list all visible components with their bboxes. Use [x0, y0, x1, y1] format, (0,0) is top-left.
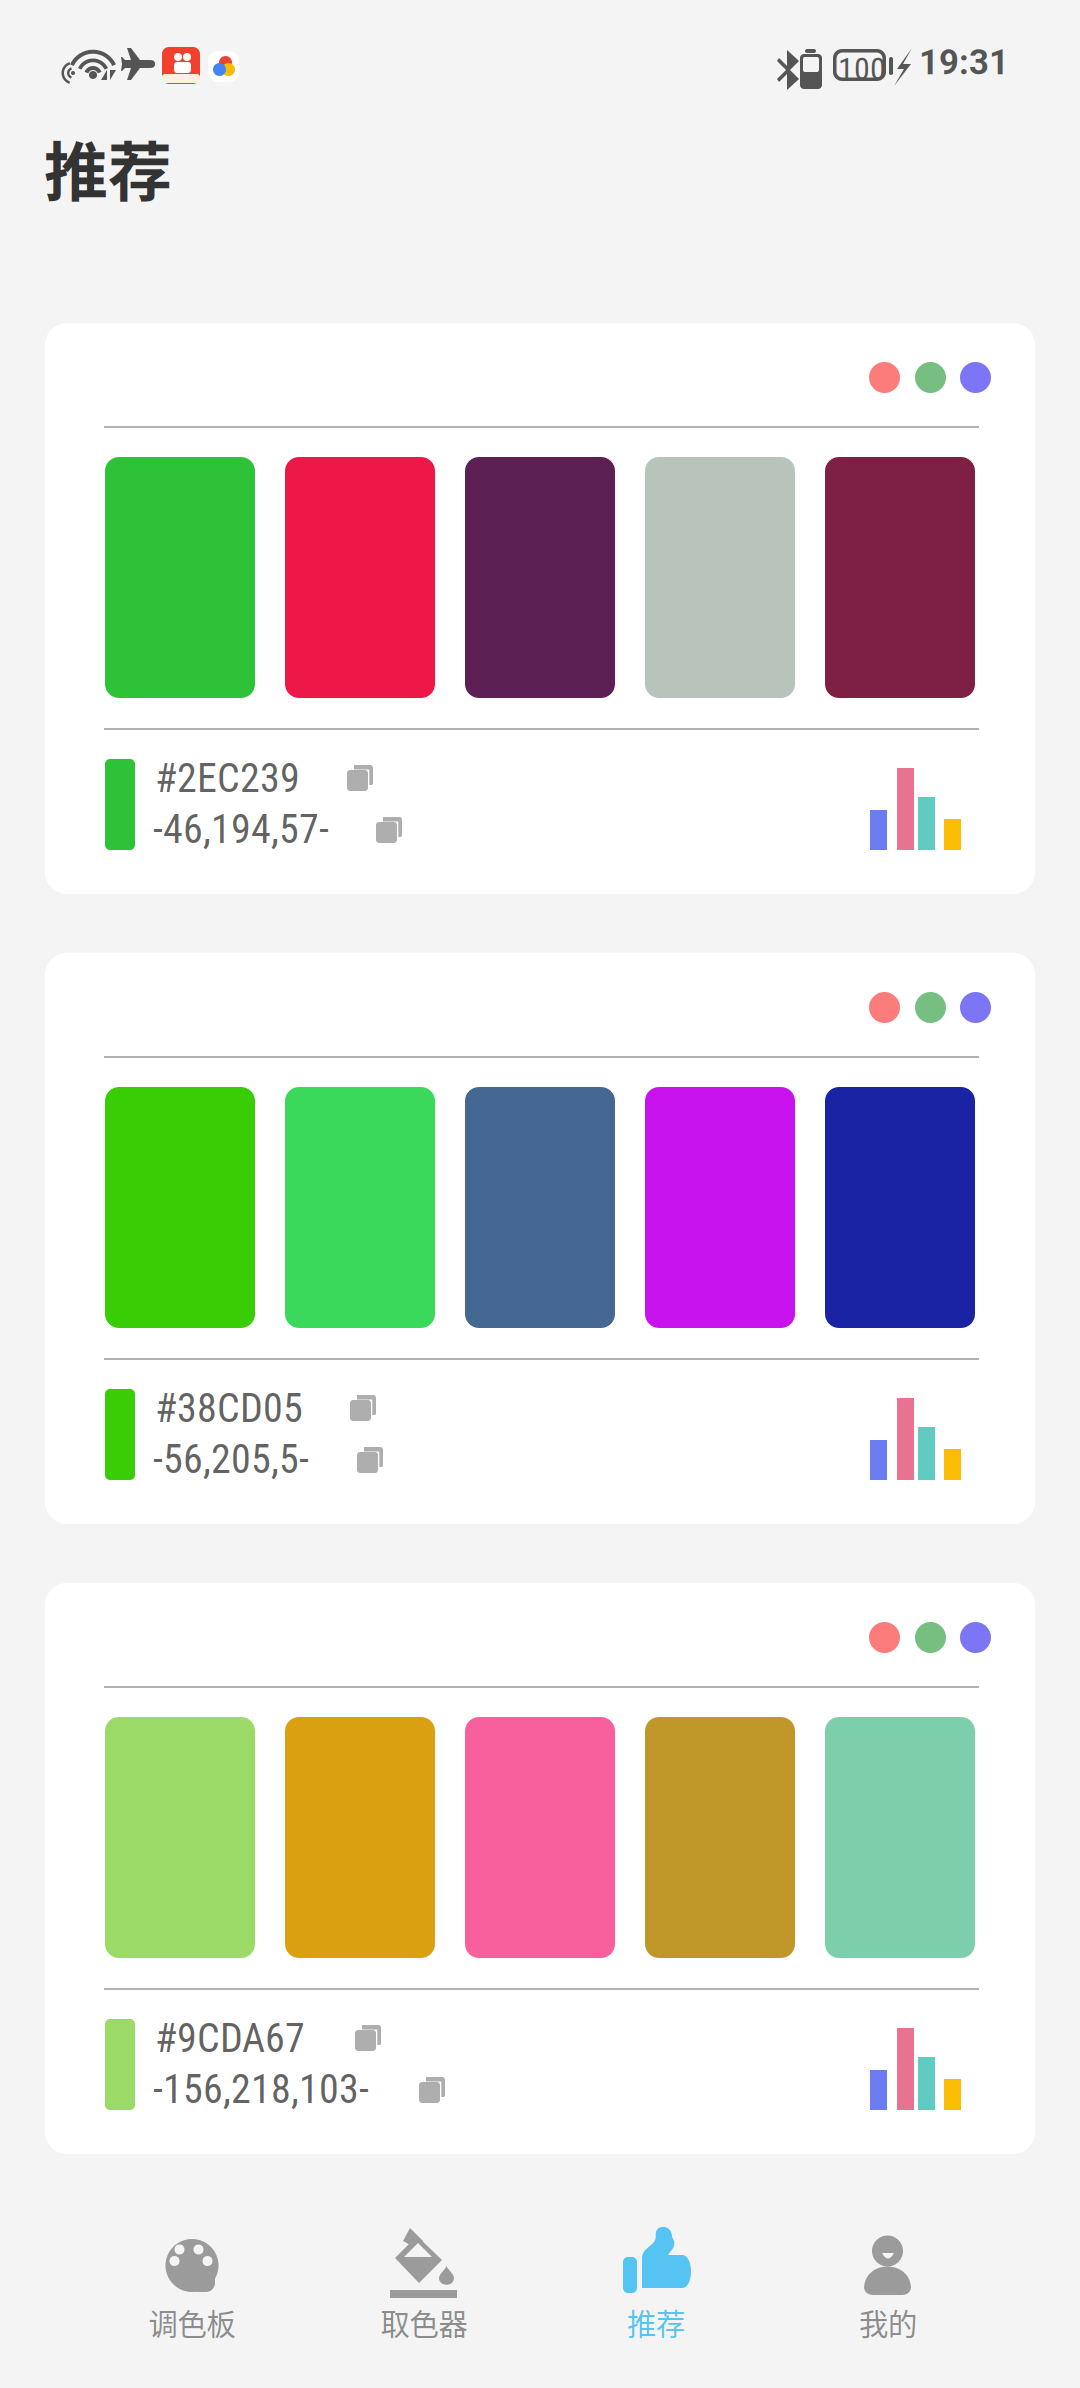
button[interactable]: 我的	[772, 2226, 1004, 2382]
staticText: 100	[838, 50, 886, 87]
button[interactable]: #38CD05	[45, 953, 1035, 1524]
staticText: 推荐	[627, 2301, 685, 2343]
staticText: #9CDA67	[155, 2015, 305, 2062]
staticText: 19:31	[919, 42, 1009, 83]
staticText: 取色器	[380, 2301, 467, 2343]
staticText: -46,194,57-	[153, 806, 329, 853]
staticText: 推荐	[44, 121, 172, 214]
staticText: 我的	[859, 2301, 917, 2343]
button[interactable]: 取色器	[308, 2226, 540, 2382]
staticText: -156,218,103-	[153, 2066, 369, 2113]
staticText: #38CD05	[155, 1385, 303, 1432]
button[interactable]: #2EC239	[45, 323, 1035, 894]
staticText: 调色板	[148, 2301, 235, 2343]
staticText: #2EC239	[155, 755, 300, 802]
button[interactable]: 调色板	[76, 2226, 308, 2382]
button[interactable]: 推荐	[540, 2226, 772, 2382]
button[interactable]: #9CDA67	[45, 1583, 1035, 2154]
staticText: -56,205,5-	[153, 1436, 309, 1483]
